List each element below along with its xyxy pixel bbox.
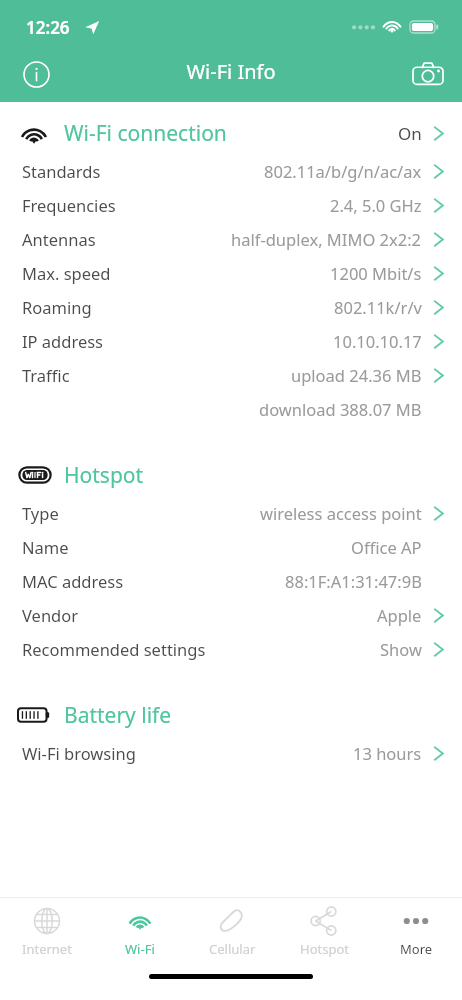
staticText: Cellular	[209, 940, 256, 958]
staticText: upload 24.36 MB	[291, 364, 422, 386]
button[interactable]: Traffic	[0, 358, 462, 392]
button[interactable]: Hotspot	[278, 898, 370, 958]
staticText: MAC address	[22, 570, 124, 592]
staticText: Max. speed	[22, 262, 111, 284]
button[interactable]: Hotspot	[0, 454, 462, 496]
staticText: 802.11a/b/g/n/ac/ax	[264, 160, 422, 182]
staticText: Traffic	[22, 364, 70, 386]
staticText: 13 hours	[353, 742, 422, 764]
staticText: half-duplex, MIMO 2x2:2	[231, 228, 422, 250]
staticText: 88:1F:A1:31:47:9B	[285, 570, 422, 592]
button[interactable]: Standards	[0, 154, 462, 188]
staticText: wireless access point	[260, 502, 422, 524]
staticText: Hotspot	[64, 461, 144, 490]
button[interactable]: Type	[0, 496, 462, 530]
staticText: 10.10.10.17	[333, 330, 422, 352]
staticText: Type	[22, 502, 59, 524]
button[interactable]: More	[370, 898, 462, 958]
staticText: Internet	[22, 940, 72, 958]
button[interactable]: Vendor	[0, 598, 462, 632]
button[interactable]: IP address	[0, 324, 462, 358]
staticText: 2.4, 5.0 GHz	[330, 194, 422, 216]
staticText: 1200 Mbit/s	[330, 262, 422, 284]
staticText: Roaming	[22, 296, 92, 318]
staticText: download 388.07 MB	[259, 398, 422, 420]
staticText: Hotspot	[300, 940, 349, 958]
staticText: 12:26	[26, 16, 70, 39]
staticText: Apple	[377, 604, 422, 626]
button[interactable]: Cellular	[186, 898, 278, 958]
staticText: More	[400, 940, 433, 958]
button[interactable]: MAC address	[0, 564, 462, 598]
staticText: Antennas	[22, 228, 96, 250]
button[interactable]: Wi-Fi	[93, 898, 186, 958]
button[interactable]: Max. speed	[0, 256, 462, 290]
button[interactable]: Wi-Fi browsing	[0, 736, 462, 770]
button[interactable]: Recommended settings	[0, 632, 462, 666]
staticText: Frequencies	[22, 194, 116, 216]
button[interactable]: Wi-Fi connection	[0, 112, 462, 154]
button[interactable]: Info	[14, 52, 58, 96]
button[interactable]: download 388.07 MB	[0, 392, 462, 426]
staticText: Wi-Fi Info	[186, 58, 276, 85]
staticText: Show	[380, 638, 422, 660]
staticText: 802.11k/r/v	[334, 296, 422, 318]
button[interactable]: Antennas	[0, 222, 462, 256]
button[interactable]: Frequencies	[0, 188, 462, 222]
staticText: Standards	[22, 160, 101, 182]
staticText: IP address	[22, 330, 104, 352]
button[interactable]: Camera	[406, 52, 450, 96]
staticText: Wi-Fi connection	[64, 119, 227, 148]
staticText: Office AP	[351, 536, 422, 558]
staticText: Vendor	[22, 604, 79, 626]
button[interactable]: Battery life	[0, 694, 462, 736]
staticText: Recommended settings	[22, 638, 206, 660]
staticText: Wi-Fi browsing	[22, 742, 136, 764]
staticText: On	[398, 122, 422, 145]
button[interactable]: Roaming	[0, 290, 462, 324]
staticText: Wi-Fi	[125, 940, 155, 958]
staticText: Name	[22, 536, 69, 558]
button[interactable]: Internet	[0, 898, 93, 958]
staticText: Battery life	[64, 701, 172, 730]
button[interactable]: Name	[0, 530, 462, 564]
